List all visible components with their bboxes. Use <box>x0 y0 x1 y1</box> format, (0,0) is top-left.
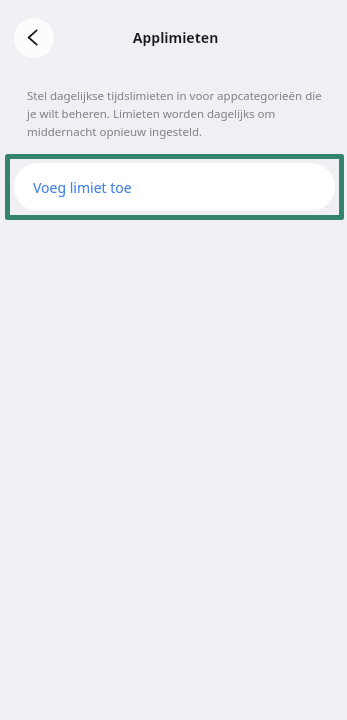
staticText: Stel dagelijkse tijdslimieten in voor ap… <box>27 88 326 139</box>
staticText: Voeg limiet toe <box>33 178 132 197</box>
button[interactable]: Voeg limiet toe <box>5 154 344 220</box>
button[interactable]: Back <box>14 18 54 58</box>
staticText: Applimieten <box>2 28 347 47</box>
